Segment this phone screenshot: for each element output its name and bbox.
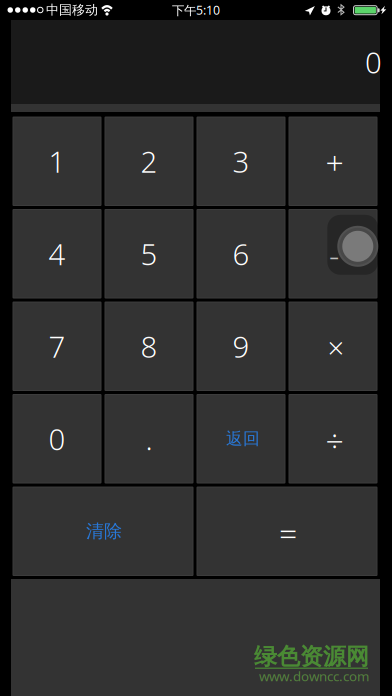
button[interactable]: 0: [13, 394, 101, 483]
staticText: 4: [48, 234, 65, 274]
button[interactable]: 1: [13, 117, 101, 205]
staticText: =: [279, 510, 297, 554]
staticText: +: [325, 140, 343, 184]
button[interactable]: 8: [105, 302, 193, 390]
button[interactable]: 5: [105, 209, 193, 298]
button[interactable]: 3: [197, 117, 285, 205]
staticText: 中国移动: [46, 2, 98, 18]
staticText: 2: [140, 141, 157, 181]
button[interactable]: 9: [197, 302, 285, 390]
staticText: 下午5:10: [172, 2, 220, 18]
button[interactable]: 7: [13, 302, 101, 390]
staticText: 8: [140, 326, 157, 366]
staticText: 0: [365, 42, 382, 82]
staticText: 返回: [226, 428, 260, 449]
button[interactable]: 返回: [197, 394, 285, 483]
staticText: 7: [48, 326, 65, 366]
button[interactable]: ×: [289, 302, 377, 390]
button[interactable]: +: [289, 117, 377, 205]
button[interactable]: .: [105, 394, 193, 483]
button[interactable]: 6: [197, 209, 285, 298]
button[interactable]: -: [289, 209, 377, 298]
staticText: 0: [48, 419, 65, 459]
staticText: -: [329, 233, 339, 277]
staticText: 9: [232, 326, 249, 366]
staticText: ÷: [325, 418, 343, 462]
staticText: 3: [232, 141, 249, 181]
staticText: ×: [327, 327, 344, 367]
button[interactable]: 2: [105, 117, 193, 205]
staticText: 5: [140, 234, 157, 274]
staticText: 6: [232, 234, 249, 274]
staticText: www.downcc.com: [259, 667, 369, 685]
button[interactable]: 4: [13, 209, 101, 298]
button[interactable]: ÷: [289, 394, 377, 483]
staticText: 清除: [86, 520, 122, 543]
staticText: .: [145, 419, 152, 459]
staticText: 绿色资源网: [254, 642, 369, 671]
staticText: 1: [48, 141, 65, 181]
button[interactable]: 清除: [13, 487, 193, 575]
button[interactable]: AssistiveTouch: [327, 215, 378, 275]
button[interactable]: =: [197, 487, 377, 575]
